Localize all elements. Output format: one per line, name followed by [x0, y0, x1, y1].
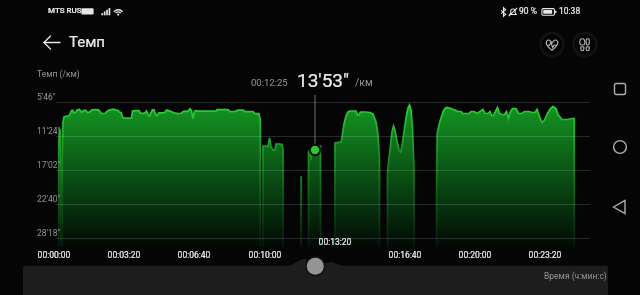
button[interactable]: Back: [38, 30, 66, 58]
button[interactable]: Back: [607, 194, 633, 220]
button[interactable]: Home: [607, 134, 633, 160]
staticText: 00:13:20: [305, 237, 365, 295]
staticText: 00:06:40: [164, 250, 224, 295]
staticText: 11'24": [37, 126, 61, 136]
staticText: 00:16:40: [375, 250, 435, 295]
staticText: 00:10:00: [235, 250, 295, 295]
staticText: Темп (/км): [37, 69, 80, 79]
staticText: 00:20:00: [445, 250, 505, 295]
staticText: Время (ч:мин:с): [544, 271, 607, 281]
staticText: Темп: [69, 33, 105, 51]
staticText: 5'46": [37, 92, 56, 102]
staticText: 00:00:00: [24, 250, 84, 295]
staticText: 28'18": [37, 228, 61, 238]
staticText: 10:38: [559, 6, 581, 16]
staticText: 00:03:20: [94, 250, 154, 295]
staticText: MTS RUS: [48, 6, 82, 15]
staticText: 00:12:25: [251, 77, 288, 88]
staticText: 00:23:20: [515, 250, 575, 295]
button[interactable]: Cadence: [571, 31, 599, 59]
staticText: 22'40": [37, 194, 61, 204]
staticText: 17'02": [37, 160, 61, 170]
staticText: 13'53": [297, 69, 350, 91]
staticText: 90 %: [519, 6, 537, 16]
staticText: /км: [355, 76, 373, 88]
button[interactable]: Recents: [607, 76, 633, 102]
button[interactable]: Heart rate: [538, 31, 566, 59]
